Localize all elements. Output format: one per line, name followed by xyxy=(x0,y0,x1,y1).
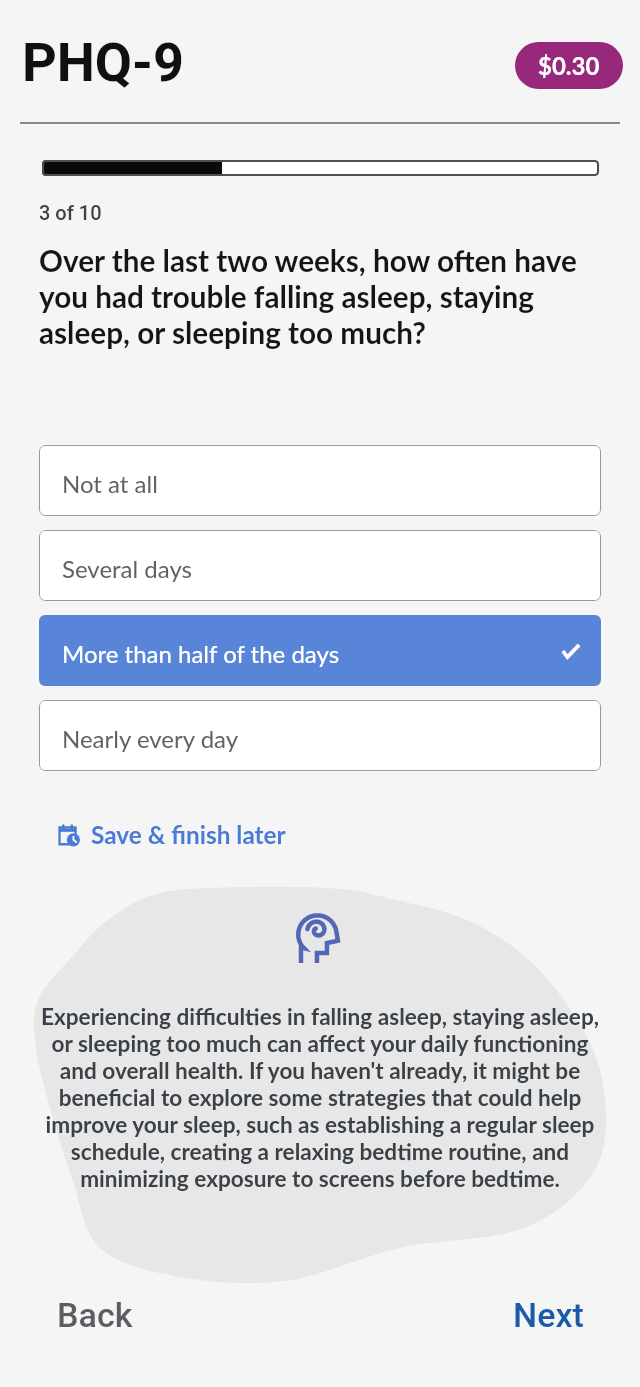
staticText: Save & finish later xyxy=(91,820,286,849)
staticText: Back xyxy=(57,1295,133,1335)
other: Psychology tip xyxy=(294,913,339,963)
button[interactable]: Nearly every day xyxy=(39,700,601,771)
staticText: PHQ-9 xyxy=(22,31,184,94)
staticText: Next xyxy=(513,1295,584,1335)
other: Save and finish later xyxy=(58,824,80,846)
staticText: Several days xyxy=(62,554,192,583)
button[interactable]: More than half of the days xyxy=(39,615,601,686)
button[interactable]: Not at all xyxy=(39,445,601,516)
button[interactable]: Save and finish later xyxy=(58,820,286,849)
staticText: 3 of 10 xyxy=(39,201,102,224)
staticText: $0.30 xyxy=(538,51,600,80)
button[interactable]: Several days xyxy=(39,530,601,601)
staticText: More than half of the days xyxy=(62,639,340,668)
button[interactable]: Back xyxy=(0,1287,153,1343)
staticText: Over the last two weeks, how often have … xyxy=(39,243,599,351)
button[interactable]: Next xyxy=(493,1287,640,1343)
staticText: Not at all xyxy=(62,469,158,498)
staticText: Experiencing difficulties in falling asl… xyxy=(40,1003,600,1192)
staticText: Nearly every day xyxy=(62,724,239,753)
button[interactable]: $0.30 xyxy=(515,42,623,89)
